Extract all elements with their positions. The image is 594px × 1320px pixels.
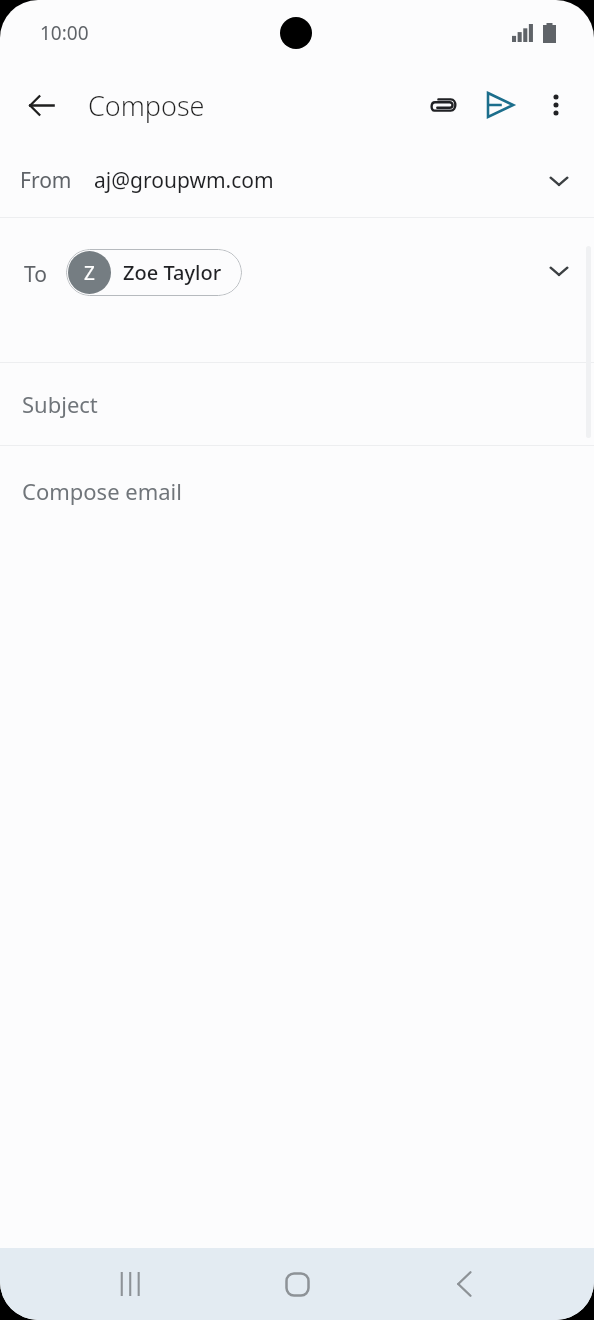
staticText: Subject: [22, 389, 98, 419]
button[interactable]: Subject: [0, 363, 594, 445]
button[interactable]: More options: [528, 77, 584, 133]
staticText: Compose email: [22, 476, 182, 506]
button[interactable]: Home: [265, 1252, 329, 1316]
button[interactable]: Attach file: [416, 77, 472, 133]
button[interactable]: From: [0, 144, 594, 217]
staticText: aj@groupwm.com: [94, 166, 274, 195]
button[interactable]: To: [0, 218, 594, 362]
staticText: 10:00: [40, 20, 89, 46]
staticText: Compose: [88, 87, 205, 124]
button[interactable]: Back: [432, 1252, 496, 1316]
staticText: Z: [84, 260, 95, 286]
button[interactable]: Compose email: [0, 446, 594, 1320]
button[interactable]: Z: [66, 249, 242, 296]
staticText: Zoe Taylor: [123, 259, 222, 286]
button[interactable]: Back: [14, 78, 68, 132]
button[interactable]: Recent apps: [99, 1252, 163, 1316]
staticText: From: [20, 166, 72, 195]
button[interactable]: Send: [472, 77, 528, 133]
staticText: To: [24, 260, 47, 289]
